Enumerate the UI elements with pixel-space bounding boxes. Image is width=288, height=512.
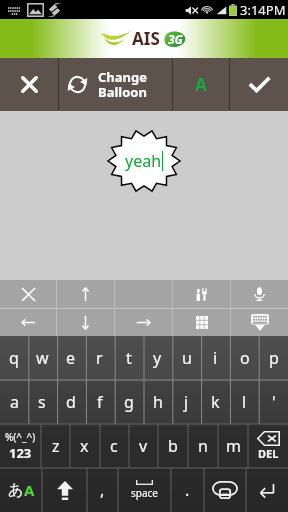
staticText: r <box>96 347 103 369</box>
button[interactable]: Settings <box>173 280 230 308</box>
staticText: . <box>185 479 190 501</box>
staticText: s <box>38 391 46 413</box>
button[interactable]: Hide keyboard <box>231 309 288 336</box>
staticText: p <box>269 347 279 369</box>
button[interactable]: h <box>143 380 172 424</box>
button[interactable]: Done <box>230 58 288 111</box>
staticText: n <box>198 435 208 457</box>
staticText: c <box>110 435 118 457</box>
button[interactable]: e <box>56 336 85 380</box>
button[interactable]: b <box>158 424 188 468</box>
button[interactable] <box>204 468 246 512</box>
staticText: v <box>139 435 148 457</box>
button[interactable]: p <box>259 336 288 380</box>
button[interactable] <box>42 468 87 512</box>
staticText: f <box>97 391 103 413</box>
button[interactable]: Change Balloon <box>59 58 172 111</box>
button[interactable]: a <box>0 380 28 424</box>
button[interactable]: j <box>172 380 201 424</box>
button[interactable]: k <box>201 380 230 424</box>
staticText: g <box>124 391 134 413</box>
button[interactable]: v <box>128 424 158 468</box>
button[interactable]: q <box>0 336 28 380</box>
staticText: m <box>226 435 241 457</box>
staticText: a <box>10 391 19 413</box>
button[interactable]: y <box>143 336 172 380</box>
staticText: y <box>153 347 162 369</box>
staticText: A <box>24 480 35 500</box>
staticText: 3G <box>168 31 183 47</box>
button[interactable]: n <box>188 424 218 468</box>
button[interactable]: Text style <box>173 58 229 111</box>
button[interactable]: , <box>87 468 118 512</box>
staticText: q <box>9 347 19 369</box>
button[interactable]: g <box>114 380 143 424</box>
button[interactable]: Voice input <box>231 280 288 308</box>
staticText: h <box>153 391 163 413</box>
staticText: 123 <box>9 444 32 462</box>
button[interactable]: Move right <box>115 309 172 336</box>
button[interactable]: c <box>99 424 128 468</box>
staticText: A <box>195 73 207 96</box>
button[interactable]: Symbols <box>173 309 230 336</box>
staticText: b <box>168 435 178 457</box>
button[interactable]: i <box>201 336 230 380</box>
button[interactable]: Close <box>0 280 56 308</box>
button[interactable]: Move down <box>57 309 114 336</box>
staticText: space <box>131 486 158 500</box>
button[interactable]: r <box>85 336 114 380</box>
staticText: o <box>240 347 250 369</box>
button[interactable]: o <box>230 336 259 380</box>
button[interactable]: l <box>230 380 259 424</box>
staticText: , <box>100 479 105 501</box>
staticText: l <box>242 391 247 413</box>
button[interactable]: x <box>70 424 99 468</box>
staticText: w <box>36 347 49 369</box>
staticText: %(^_^) <box>5 430 36 444</box>
staticText: d <box>66 391 76 413</box>
button[interactable]: z <box>41 424 70 468</box>
staticText: j <box>184 391 189 413</box>
button[interactable]: space <box>118 468 171 512</box>
staticText: あ <box>8 481 24 500</box>
staticText: AIS <box>132 27 160 50</box>
staticText: z <box>52 435 60 457</box>
staticText: x <box>80 435 89 457</box>
button[interactable]: f <box>85 380 114 424</box>
button[interactable] <box>246 468 288 512</box>
button[interactable]: DEL <box>248 424 288 468</box>
button[interactable]: . <box>171 468 204 512</box>
button[interactable]: m <box>218 424 248 468</box>
button[interactable]: d <box>56 380 85 424</box>
button[interactable]: w <box>28 336 56 380</box>
button[interactable]: ' <box>259 380 288 424</box>
staticText: DEL <box>258 446 279 461</box>
button[interactable]: %(^_^) <box>0 424 41 468</box>
button[interactable]: Move up <box>57 280 114 308</box>
staticText: i <box>213 347 218 369</box>
staticText: yeah <box>125 150 162 172</box>
button[interactable]: あ <box>0 468 42 512</box>
staticText: ' <box>272 391 276 413</box>
button[interactable]: u <box>172 336 201 380</box>
button[interactable]: t <box>114 336 143 380</box>
staticText: t <box>126 347 132 369</box>
staticText: e <box>66 347 76 369</box>
button[interactable]: Move left <box>0 309 56 336</box>
staticText: u <box>182 347 192 369</box>
staticText: 3:14PM <box>240 1 286 19</box>
staticText: Change Balloon <box>98 68 148 101</box>
button[interactable]: s <box>28 380 56 424</box>
staticText: k <box>211 391 220 413</box>
button[interactable]: Close <box>0 58 58 111</box>
